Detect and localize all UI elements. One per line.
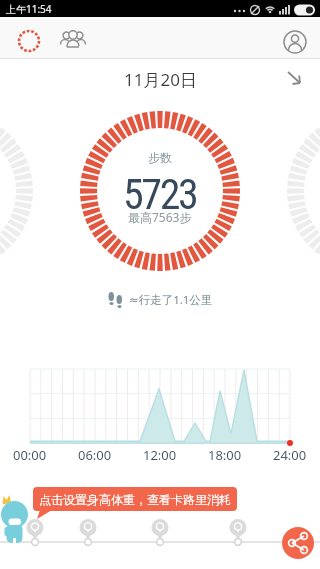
button[interactable]: 点击设置身高体重，查看卡路里消耗	[33, 487, 237, 511]
staticText: 06:00	[78, 446, 112, 464]
staticText: 12:00	[143, 446, 177, 464]
button[interactable]	[78, 518, 98, 546]
button[interactable]	[282, 29, 308, 55]
staticText: 24:00	[273, 446, 307, 464]
button[interactable]	[282, 527, 314, 559]
staticText: ≈行走了1.1公里	[129, 292, 213, 308]
staticText: 点击设置身高体重，查看卡路里消耗	[39, 492, 231, 507]
staticText: 5723	[123, 170, 197, 219]
button[interactable]	[228, 518, 248, 546]
staticText: 11月20日	[124, 68, 197, 91]
button[interactable]: 11月20日	[0, 65, 320, 93]
button[interactable]	[14, 26, 44, 56]
staticText: 上午11:54	[6, 2, 52, 16]
button[interactable]	[25, 518, 45, 546]
button[interactable]	[58, 26, 88, 56]
staticText: 步数	[148, 150, 172, 165]
staticText: 18:00	[208, 446, 242, 464]
staticText: 00:00	[13, 446, 47, 464]
staticText: 最高7563步	[128, 209, 192, 225]
button[interactable]	[150, 518, 170, 546]
